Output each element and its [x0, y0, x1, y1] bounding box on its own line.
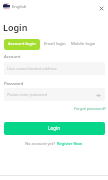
button[interactable]: Login: [4, 122, 105, 135]
button[interactable]: Mobile login: [69, 38, 98, 50]
staticText: Password: [4, 80, 24, 86]
button[interactable]: Email login: [42, 38, 68, 50]
staticText: No account yet?: [25, 141, 55, 146]
button[interactable]: English: [2, 2, 28, 11]
staticText: Login: [48, 125, 61, 131]
button[interactable]: User name/student address: [4, 62, 105, 75]
button[interactable]: Register Now: [57, 141, 83, 146]
staticText: Account login: [8, 40, 36, 46]
staticText: Register Now: [57, 141, 83, 146]
staticText: Email login: [44, 41, 66, 47]
button[interactable]: Forgot password?: [72, 104, 108, 113]
staticText: Forgot password?: [74, 106, 106, 111]
button[interactable]: Close: [96, 3, 106, 13]
staticText: Account: [4, 53, 21, 59]
button[interactable]: Show password: [94, 91, 102, 99]
staticText: Mobile login: [71, 41, 96, 47]
staticText: English: [12, 4, 27, 10]
button[interactable]: Account login: [4, 39, 40, 50]
staticText: Please enter password: [7, 92, 48, 97]
staticText: User name/student address: [7, 66, 57, 71]
button[interactable]: Please enter password: [4, 88, 105, 101]
staticText: Login: [3, 21, 28, 33]
